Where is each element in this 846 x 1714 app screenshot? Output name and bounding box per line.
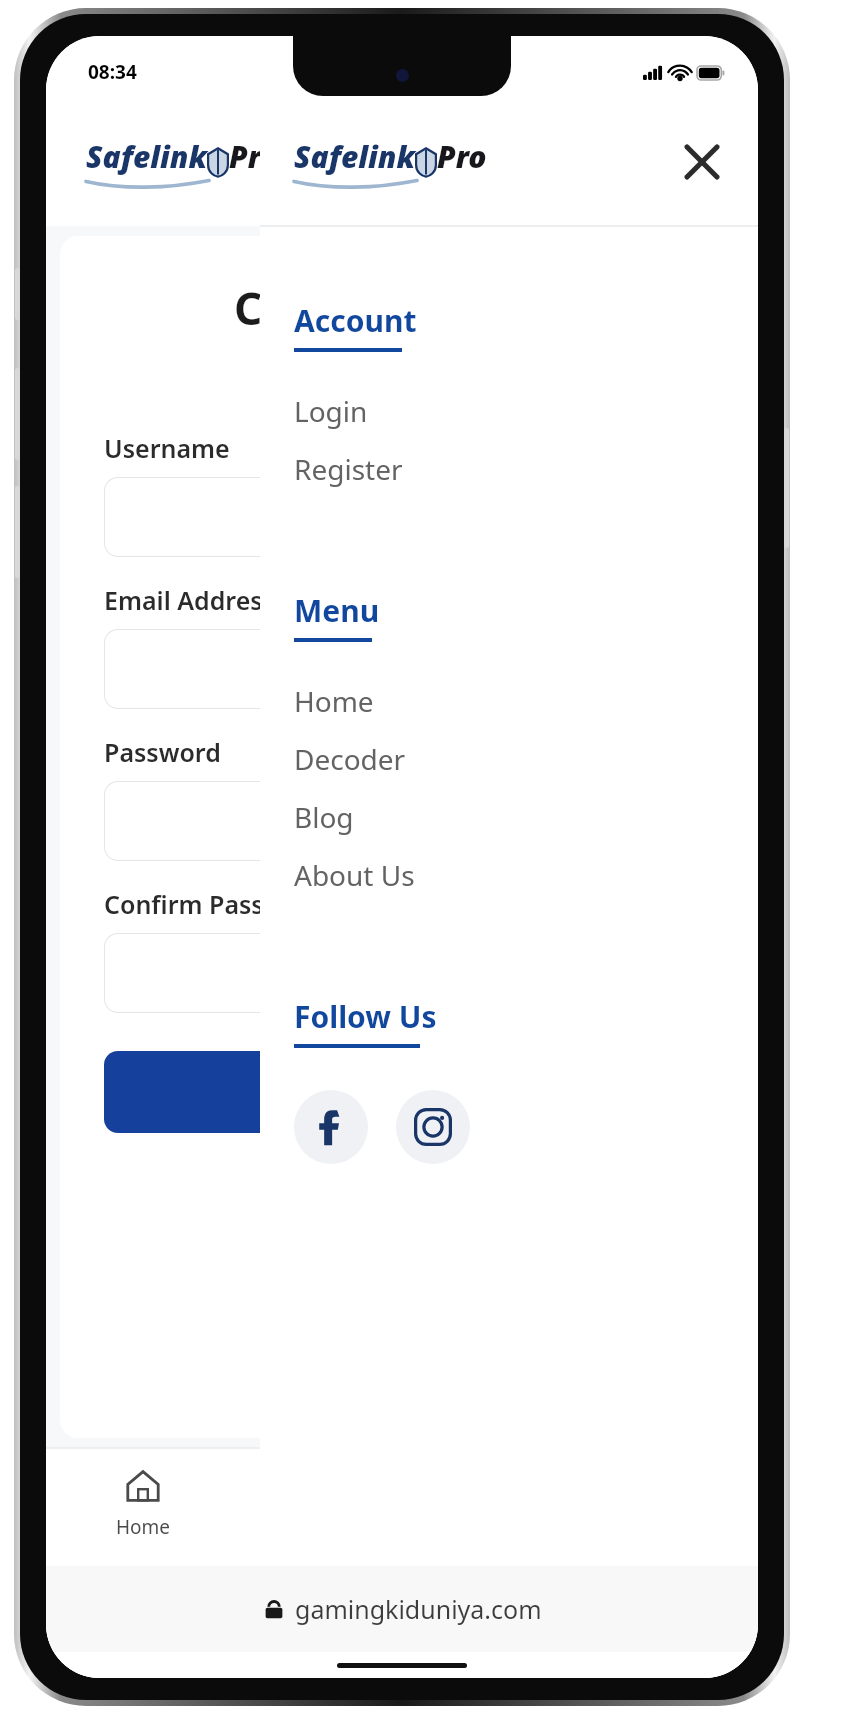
button[interactable] [104, 629, 700, 709]
button[interactable]: Blog [294, 788, 734, 846]
staticText: Password [104, 735, 221, 769]
staticText: About Us [294, 856, 415, 894]
staticText: Register [294, 450, 403, 488]
staticText: 08:34 [88, 59, 137, 85]
staticText: Follow Us [294, 996, 437, 1037]
staticText: Register [350, 1075, 455, 1109]
button[interactable]: Close menu [670, 130, 734, 194]
staticText: Login [294, 392, 368, 430]
staticText: Home [294, 682, 374, 720]
staticText: Home [116, 1514, 171, 1540]
button[interactable] [104, 477, 700, 557]
button[interactable]: Home [68, 1462, 218, 1540]
button[interactable]: Instagram [396, 1090, 470, 1164]
staticText: Pro [229, 136, 279, 177]
staticText: Confirm Password [104, 887, 326, 921]
staticText: Create Account [234, 278, 571, 338]
button[interactable]: Register [104, 1051, 700, 1133]
staticText: Account [294, 300, 417, 341]
staticText: Decoder [294, 740, 406, 778]
staticText: Pro [437, 136, 487, 177]
staticText: gamingkiduniya.com [295, 1592, 542, 1626]
button[interactable]: Register [294, 440, 734, 498]
button[interactable]: About Us [294, 846, 734, 904]
staticText: Safelink [294, 136, 415, 177]
staticText: Menu [294, 590, 380, 631]
button[interactable]: gamingkiduniya.com [263, 1592, 542, 1626]
button[interactable] [104, 781, 700, 861]
staticText: Username [104, 431, 230, 465]
staticText: Email Address [104, 583, 275, 617]
button[interactable]: Home [294, 672, 734, 730]
button[interactable] [104, 933, 700, 1013]
button[interactable]: Login [294, 382, 734, 440]
button[interactable]: Facebook [294, 1090, 368, 1164]
staticText: Safelink [86, 136, 207, 177]
button[interactable]: Decoder [294, 730, 734, 788]
staticText: Blog [294, 798, 354, 836]
